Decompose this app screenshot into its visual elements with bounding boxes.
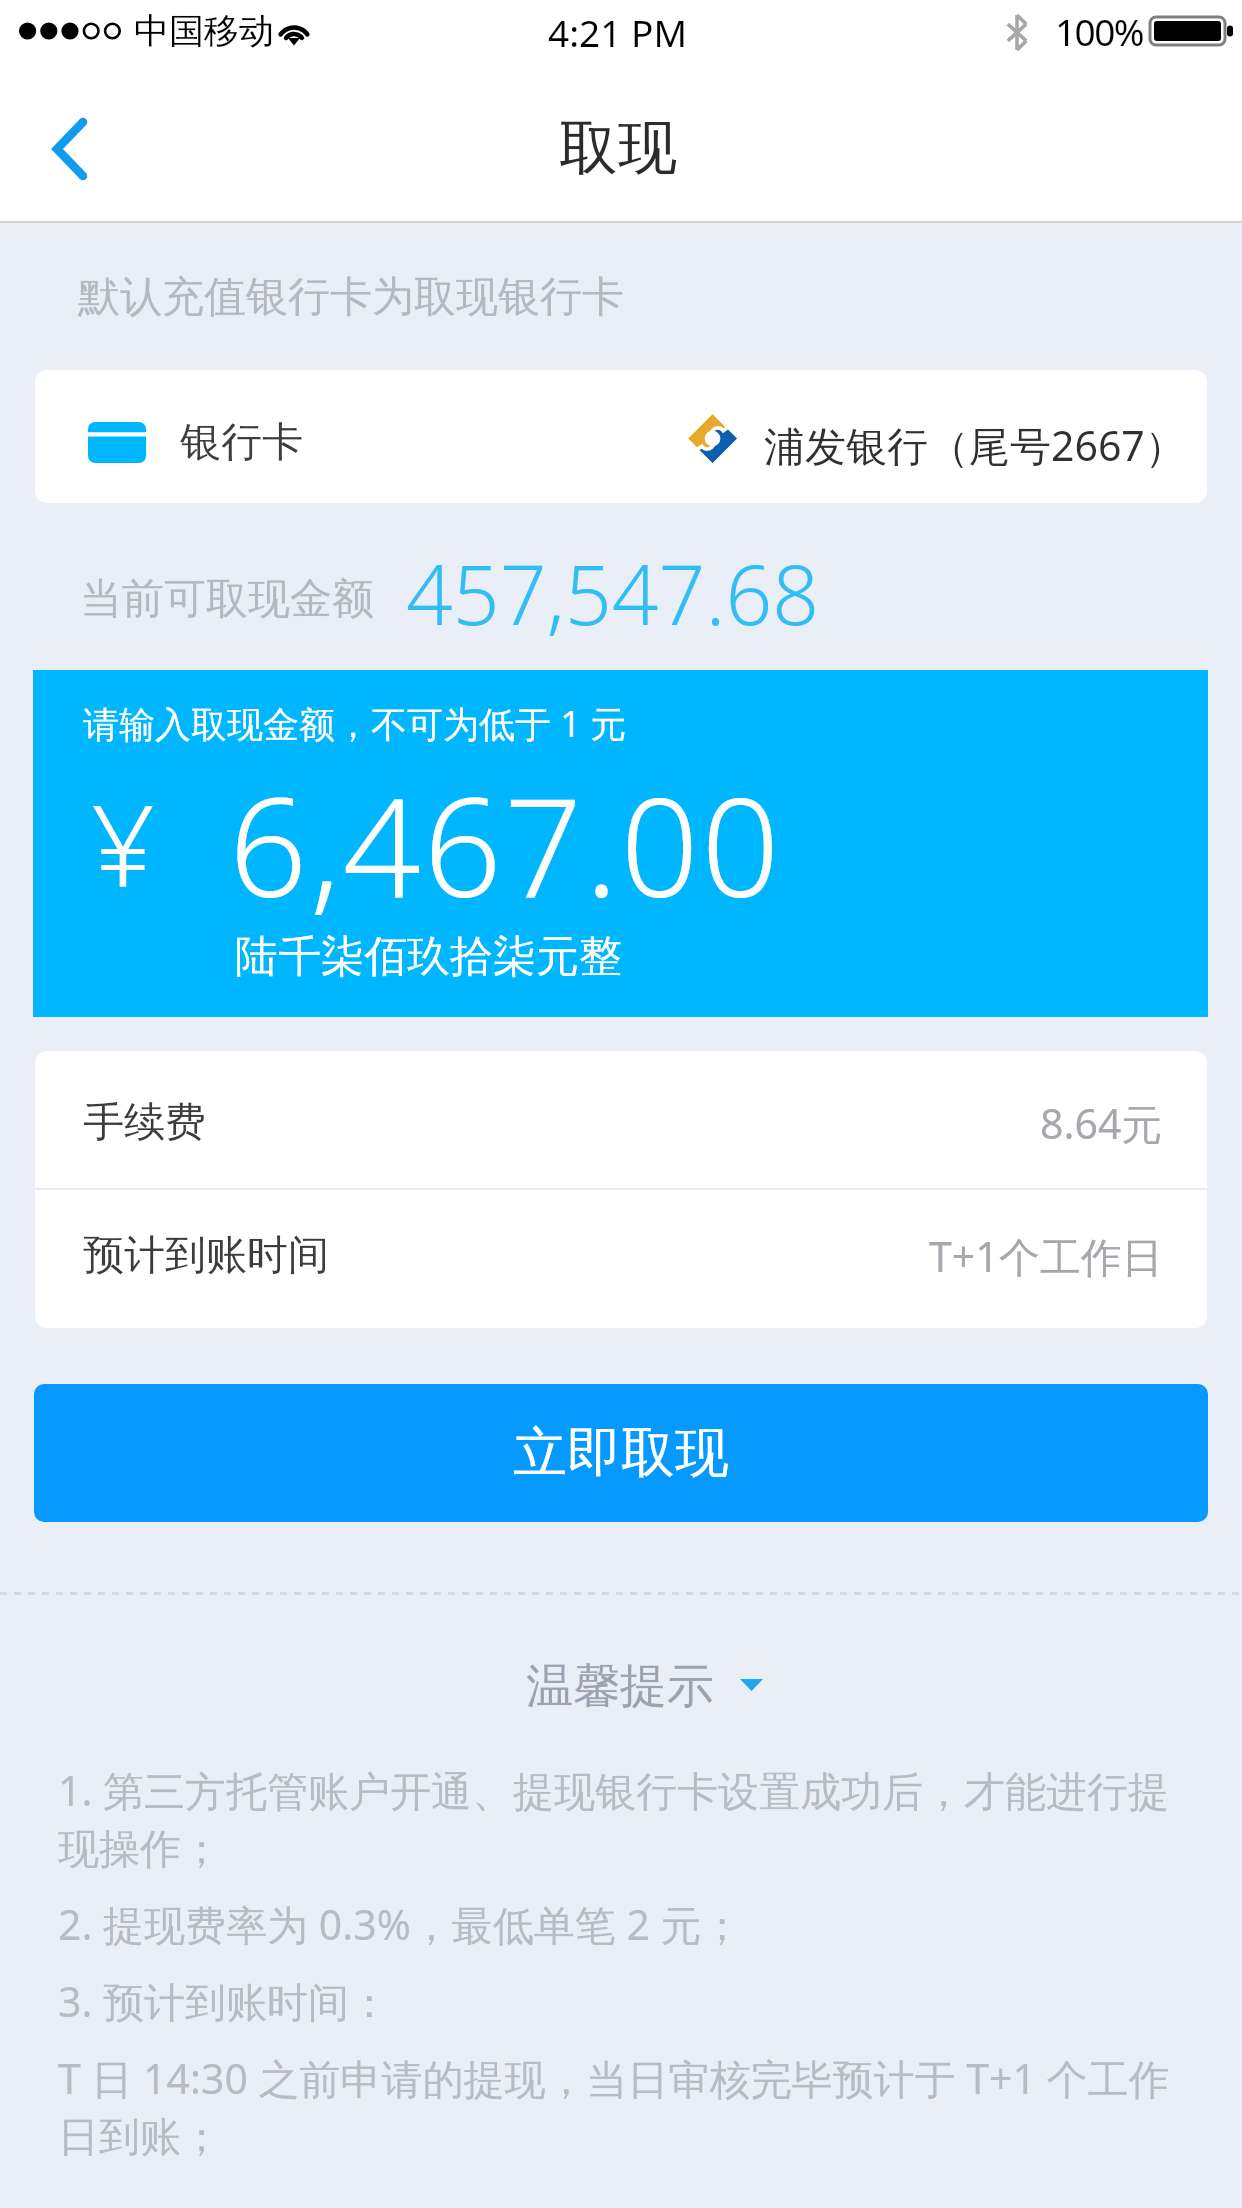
staticText: 浦发银行（尾号2667）	[764, 417, 1186, 473]
staticText: 手续费	[83, 1097, 206, 1149]
staticText: 1. 第三方托管账户开通、提现银行卡设置成功后，才能进行提现操作；	[58, 1762, 1198, 1875]
staticText: 100%	[1055, 6, 1143, 56]
staticText: 陆千柒佰玖拾柒元整	[235, 930, 622, 984]
button[interactable]: 银行卡	[35, 370, 1207, 503]
staticText: 默认充值银行卡为取现银行卡	[78, 271, 624, 324]
staticText: T 日 14:30 之前申请的提现，当日审核完毕预计于 T+1 个工作日到账；	[58, 2050, 1198, 2163]
staticText: 8.64元	[1040, 1095, 1163, 1151]
staticText: 当前可取现金额	[80, 573, 374, 626]
button[interactable]: 手续费	[35, 1051, 1207, 1188]
staticText: 457,547.68	[406, 537, 820, 649]
button[interactable]: 温馨提示	[480, 1648, 780, 1720]
staticText: 立即取现	[513, 1419, 729, 1487]
staticText: 6,467.00	[229, 751, 782, 938]
staticText: 银行卡	[180, 417, 303, 469]
staticText: 2. 提现费率为 0.3%，最低单笔 2 元；	[58, 1896, 743, 1952]
staticText: ¥	[91, 766, 155, 919]
staticText: 温馨提示	[526, 1657, 714, 1716]
staticText: T+1个工作日	[929, 1228, 1163, 1284]
button[interactable]: 预计到账时间	[35, 1190, 1207, 1327]
staticText: 中国移动	[134, 9, 274, 53]
staticText: 4:21 PM	[548, 7, 687, 57]
button[interactable]: 立即取现	[34, 1384, 1208, 1522]
staticText: 预计到账时间	[83, 1230, 329, 1282]
staticText: 3. 预计到账时间：	[58, 1973, 391, 2029]
staticText: 请输入取现金额，不可为低于 1 元	[83, 699, 627, 748]
button[interactable]: Back	[14, 90, 132, 208]
staticText: 取现	[559, 111, 677, 185]
